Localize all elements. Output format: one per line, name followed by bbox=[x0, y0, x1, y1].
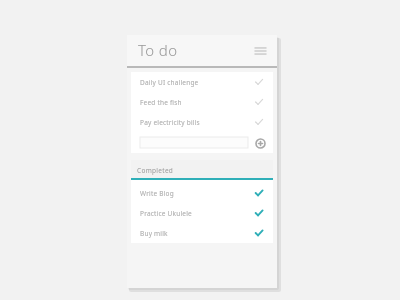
button[interactable]: Daily UI challenge bbox=[131, 72, 273, 92]
staticText: Feed the fish bbox=[140, 98, 253, 107]
staticText: Daily UI challenge bbox=[140, 78, 253, 87]
button[interactable]: Completed bbox=[131, 160, 273, 180]
staticText: Write Blog bbox=[140, 189, 253, 198]
button[interactable]: Add task bbox=[253, 136, 267, 150]
staticText: Practice Ukulele bbox=[140, 209, 253, 218]
button[interactable]: Menu bbox=[251, 42, 269, 60]
staticText: Completed bbox=[137, 166, 174, 175]
button[interactable]: Buy milk bbox=[131, 223, 273, 243]
button[interactable]: Feed the fish bbox=[131, 92, 273, 112]
button[interactable] bbox=[140, 137, 248, 148]
button[interactable]: Practice Ukulele bbox=[131, 203, 273, 223]
staticText: Pay electricity bills bbox=[140, 118, 253, 127]
staticText: Buy milk bbox=[140, 229, 253, 238]
button[interactable]: Write Blog bbox=[131, 183, 273, 203]
button[interactable]: Pay electricity bills bbox=[131, 112, 273, 132]
staticText: To do bbox=[138, 40, 178, 60]
